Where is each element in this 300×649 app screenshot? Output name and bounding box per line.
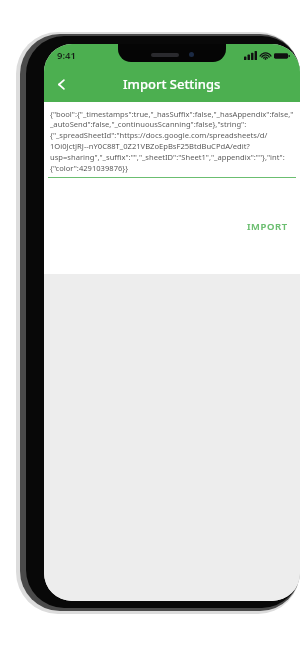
staticText: Import Settings — [123, 75, 221, 93]
staticText: 9:41 — [57, 49, 76, 62]
staticText: IMPORT — [247, 220, 288, 233]
button[interactable]: Back — [44, 67, 78, 101]
button[interactable]: IMPORT — [235, 213, 300, 240]
button[interactable]: {"bool":{"_timestamps":true,"_hasSuffix"… — [44, 109, 300, 174]
